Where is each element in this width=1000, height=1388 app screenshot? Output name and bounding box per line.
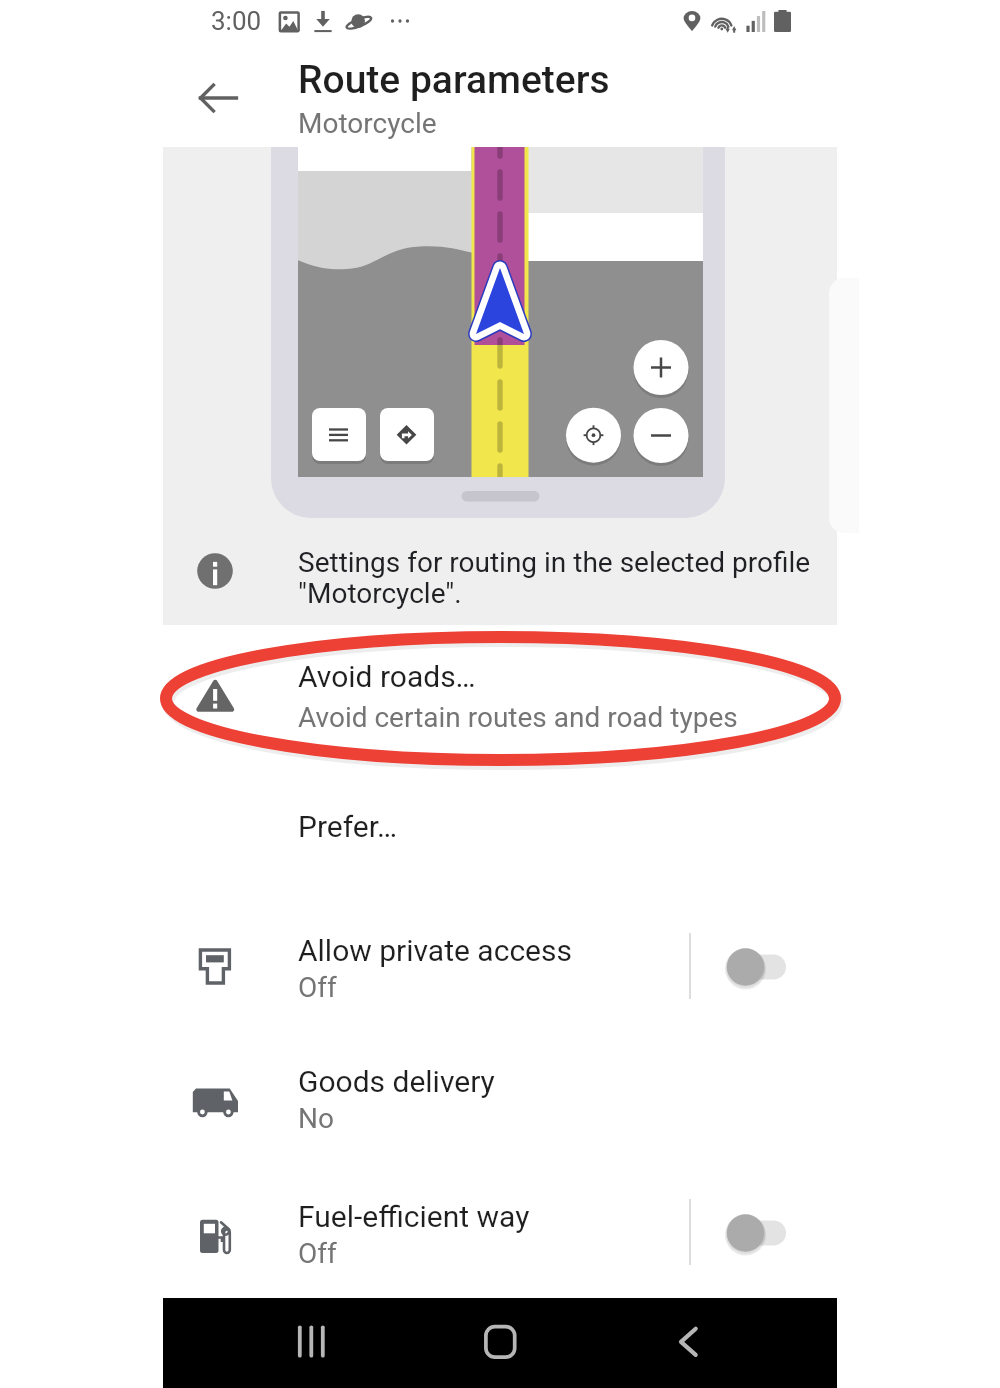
staticText: 3:00 (211, 6, 262, 36)
button[interactable]: Allow private access toggle (708, 900, 837, 1032)
staticText: Settings for routing in the selected pro… (298, 546, 811, 609)
staticText: Prefer… (298, 809, 398, 844)
button[interactable]: Fuel-efficient way toggle (708, 1166, 837, 1298)
staticText: Off (298, 1237, 337, 1270)
staticText: Route parameters (298, 57, 610, 103)
staticText: No (298, 1102, 334, 1135)
button[interactable]: Goods delivery (163, 1031, 837, 1163)
staticText: Fuel-efficient way (298, 1199, 530, 1234)
button[interactable]: Fuel-efficient way (163, 1166, 837, 1298)
button[interactable]: Avoid roads… (163, 625, 837, 785)
staticText: Avoid certain routes and road types (298, 701, 738, 734)
staticText: Avoid roads… (298, 659, 476, 694)
staticText: Allow private access (298, 933, 572, 968)
staticText: Goods delivery (298, 1064, 495, 1099)
button[interactable]: Recent apps (266, 1305, 342, 1381)
button[interactable]: Back (175, 55, 261, 141)
staticText: Off (298, 971, 337, 1004)
button[interactable]: Home (463, 1305, 539, 1381)
button[interactable]: Allow private access (163, 900, 837, 1032)
button[interactable]: Back (651, 1305, 727, 1381)
staticText: Motorcycle (298, 107, 437, 140)
